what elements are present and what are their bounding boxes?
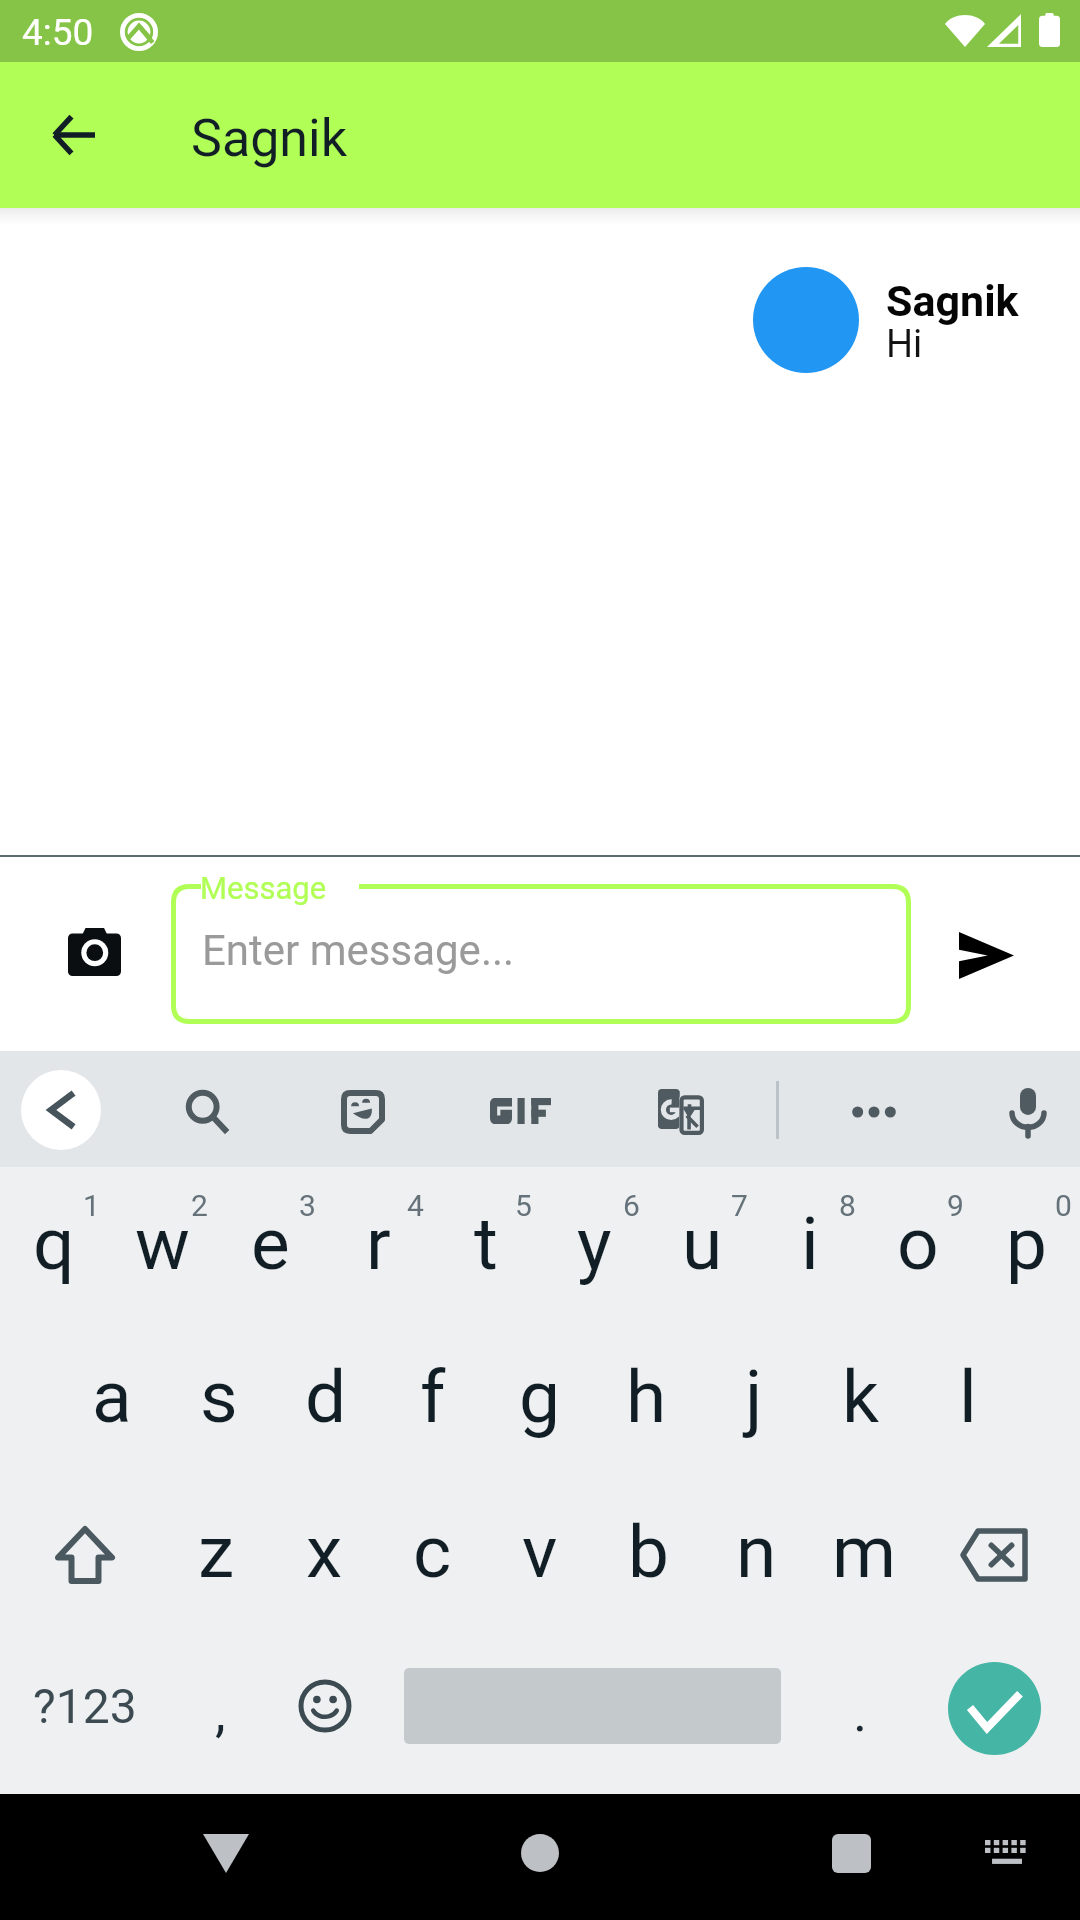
button[interactable]: x <box>270 1477 378 1632</box>
staticText: k <box>842 1354 879 1440</box>
button[interactable]: 5 <box>432 1167 540 1322</box>
staticText: s <box>200 1354 238 1440</box>
staticText: d <box>305 1354 347 1440</box>
button[interactable]: 9 <box>864 1167 972 1322</box>
button[interactable]: z <box>162 1477 270 1632</box>
staticText: Message <box>200 870 327 906</box>
button[interactable]: l <box>914 1322 1021 1477</box>
staticText: w <box>135 1201 190 1287</box>
button[interactable]: Shift <box>0 1477 162 1632</box>
button[interactable]: GIF <box>479 1069 561 1149</box>
button[interactable]: 8 <box>756 1167 864 1322</box>
button[interactable]: Emoji <box>285 1666 365 1746</box>
button[interactable]: Voice input <box>988 1072 1068 1152</box>
button[interactable]: d <box>272 1322 379 1477</box>
button[interactable]: , <box>170 1646 270 1766</box>
button[interactable]: j <box>700 1322 807 1477</box>
staticText: Sagnik <box>191 108 348 169</box>
staticText: 7 <box>731 1188 748 1223</box>
staticText: , <box>215 1681 226 1744</box>
button[interactable]: Search <box>167 1072 247 1152</box>
staticText: v <box>522 1509 558 1595</box>
button[interactable]: Navigate up <box>26 87 122 183</box>
button[interactable]: Take photo <box>44 902 144 1002</box>
button[interactable]: 0 <box>972 1167 1080 1322</box>
button[interactable]: k <box>807 1322 914 1477</box>
button[interactable]: More options <box>834 1072 914 1152</box>
staticText: r <box>366 1201 391 1287</box>
staticText: m <box>832 1509 897 1595</box>
staticText: Hi <box>886 322 923 367</box>
staticText: Sagnik <box>886 276 1019 326</box>
staticText: i <box>801 1201 819 1287</box>
button[interactable]: . <box>810 1646 910 1766</box>
button[interactable]: Back <box>186 1813 266 1893</box>
staticText: Enter message... <box>202 926 515 975</box>
staticText: u <box>682 1201 723 1287</box>
button[interactable]: 7 <box>648 1167 756 1322</box>
button[interactable]: Home <box>500 1813 580 1893</box>
button[interactable]: a <box>59 1322 165 1477</box>
staticText: l <box>959 1354 977 1440</box>
staticText: c <box>413 1509 452 1595</box>
staticText: n <box>736 1509 777 1595</box>
button[interactable]: Send <box>936 905 1036 1005</box>
staticText: 4:50 <box>22 11 94 54</box>
staticText: o <box>897 1201 939 1287</box>
staticText: 9 <box>947 1188 964 1223</box>
staticText: 0 <box>1055 1188 1072 1223</box>
staticText: q <box>33 1201 75 1287</box>
button[interactable]: 3 <box>216 1167 324 1322</box>
button[interactable]: f <box>379 1322 486 1477</box>
staticText: x <box>306 1509 343 1595</box>
staticText: b <box>628 1509 669 1595</box>
button[interactable]: h <box>593 1322 700 1477</box>
staticText: 5 <box>515 1188 532 1223</box>
button[interactable]: b <box>594 1477 702 1632</box>
button[interactable]: Enter <box>948 1662 1041 1755</box>
button[interactable]: 4 <box>324 1167 432 1322</box>
button[interactable]: Switch keyboard <box>967 1813 1047 1893</box>
staticText: 2 <box>191 1188 208 1223</box>
button[interactable]: Stickers <box>323 1072 403 1152</box>
button[interactable]: n <box>702 1477 810 1632</box>
staticText: 3 <box>299 1188 316 1223</box>
staticText: . <box>853 1681 868 1744</box>
staticText: e <box>251 1201 290 1287</box>
staticText: 4 <box>407 1188 424 1223</box>
staticText: 1 <box>83 1188 100 1223</box>
button[interactable]: Recent apps <box>811 1813 891 1893</box>
button[interactable]: Translate <box>641 1072 721 1152</box>
button[interactable]: Backspace <box>918 1477 1080 1632</box>
staticText: t <box>474 1201 498 1287</box>
button[interactable]: c <box>378 1477 486 1632</box>
staticText: p <box>1006 1201 1047 1287</box>
staticText: z <box>198 1509 235 1595</box>
staticText: h <box>626 1354 667 1440</box>
button[interactable]: 6 <box>540 1167 648 1322</box>
button[interactable]: Close toolbar <box>21 1070 101 1150</box>
button[interactable]: g <box>486 1322 593 1477</box>
button[interactable]: v <box>486 1477 594 1632</box>
staticText: 6 <box>623 1188 640 1223</box>
staticText: ?123 <box>33 1678 137 1734</box>
button[interactable]: s <box>165 1322 272 1477</box>
button[interactable]: 1 <box>0 1167 108 1322</box>
button[interactable]: ?123 <box>0 1646 170 1766</box>
staticText: y <box>577 1201 612 1287</box>
staticText: f <box>420 1354 446 1440</box>
staticText: g <box>519 1354 560 1440</box>
staticText: 8 <box>839 1188 856 1223</box>
button[interactable]: Sagnik avatar <box>753 267 859 373</box>
button[interactable]: Enter message... <box>171 884 911 1024</box>
staticText: j <box>745 1354 763 1440</box>
button[interactable]: m <box>810 1477 918 1632</box>
staticText: a <box>92 1354 132 1440</box>
button[interactable]: 2 <box>108 1167 216 1322</box>
